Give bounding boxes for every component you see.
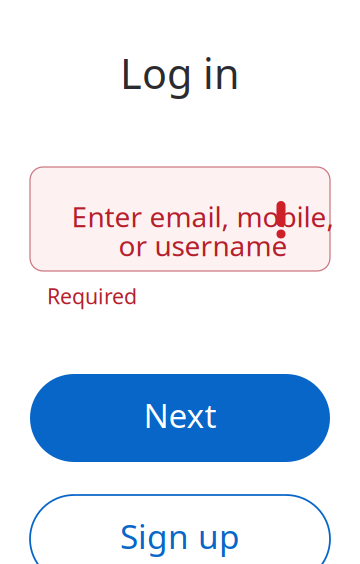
staticText: Sign up: [120, 514, 240, 558]
button[interactable]: Sign up: [30, 495, 330, 564]
button[interactable]: Next: [30, 374, 330, 462]
staticText: Required: [47, 282, 137, 310]
staticText: Next: [143, 393, 216, 437]
staticText: Log in: [120, 46, 240, 100]
button[interactable]: Enter email, mobile,: [30, 167, 330, 271]
staticText: Enter email, mobile,: [71, 198, 334, 235]
staticText: or username: [118, 227, 287, 264]
